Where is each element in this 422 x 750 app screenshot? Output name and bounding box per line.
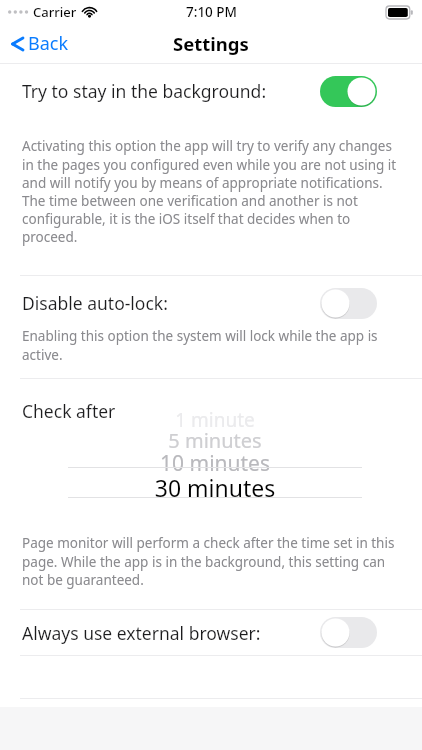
button[interactable]: Disable auto-lock: (0, 283, 422, 323)
staticText: Settings (173, 31, 249, 56)
staticText: Try to stay in the background: (22, 79, 320, 103)
staticText: Page monitor will perform a check after … (22, 534, 400, 588)
button[interactable]: Back (0, 24, 79, 63)
staticText: Disable auto-lock: (22, 291, 320, 315)
staticText: 30 minutes (68, 472, 362, 503)
staticText: Always use external browser: (22, 621, 320, 645)
staticText: Enabling this option the system will loc… (22, 327, 400, 363)
button[interactable]: Try to stay in the background: (0, 67, 422, 115)
staticText: Check after (22, 399, 116, 423)
button[interactable] (320, 76, 377, 107)
staticText: 5 minutes (68, 427, 362, 454)
staticText: Back (28, 31, 69, 56)
button[interactable]: 1 minute (68, 407, 362, 503)
staticText: Activating this option the app will try … (22, 137, 400, 245)
button[interactable] (320, 617, 377, 648)
button[interactable] (320, 288, 377, 319)
button[interactable]: Always use external browser: (0, 610, 422, 655)
staticText: Carrier (33, 3, 77, 21)
staticText: 1 minute (68, 407, 362, 433)
staticText: 7:10 PM (186, 3, 237, 21)
staticText: 10 minutes (68, 449, 362, 478)
